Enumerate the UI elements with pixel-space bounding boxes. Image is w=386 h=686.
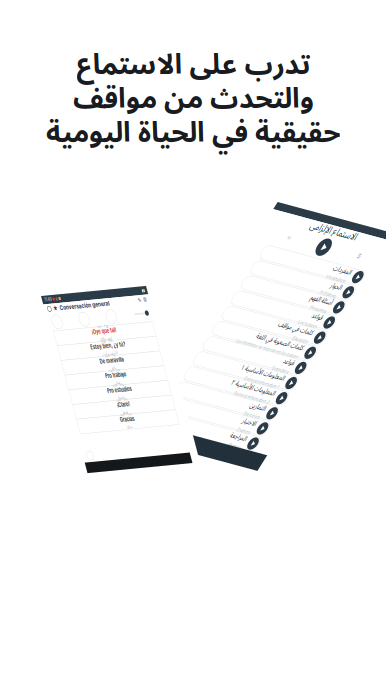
- staticText: طبعا: [263, 358, 284, 383]
- staticText: كلمات الصعوبة في اللغة: [242, 316, 386, 356]
- staticText: De maravilla: [226, 213, 322, 233]
- staticText: ¡Claro!: [248, 339, 299, 359]
- staticText: ayer hoy: [252, 371, 296, 382]
- staticText: Pro trabajo: [232, 255, 316, 275]
- staticText: عمل: [263, 274, 285, 299]
- staticText: ayer hoy: [252, 119, 296, 130]
- staticText: تدرب على الاستماع: [76, 35, 310, 94]
- staticText: Preguntas: [358, 225, 386, 241]
- staticText: الاستماع الإلزامي: [191, 6, 367, 63]
- staticText: كلمات في مواقف: [290, 274, 386, 313]
- staticText: Conversación general: [125, 51, 324, 73]
- staticText: Pro estudios: [225, 297, 323, 317]
- staticText: ★: [98, 51, 118, 73]
- staticText: ayer hoy: [252, 287, 296, 298]
- staticText: كيف حالك: [249, 148, 298, 173]
- staticText: قواعد: [382, 231, 386, 271]
- staticText: ayer hoy: [252, 203, 296, 214]
- staticText: المعلومات الأساسية ١: [256, 402, 386, 441]
- staticText: ¡Oye qué tal!: [225, 129, 323, 149]
- staticText: شكرا: [263, 400, 285, 425]
- staticText: المعلومات الأساسية ٢: [256, 444, 386, 484]
- staticText: أنا بخير و أنت: [243, 190, 305, 215]
- staticText: والتحدث من مواقف: [72, 69, 313, 128]
- staticText: أسئلة الفهم: [340, 189, 386, 228]
- staticText: حقيقية في الحياة اليومية: [45, 103, 340, 162]
- staticText: Gracias: [245, 381, 303, 401]
- staticText: ayer hoy: [252, 245, 296, 256]
- staticText: دراسة: [260, 316, 288, 341]
- staticText: Los lugares: [349, 268, 386, 284]
- staticText: ayer hoy: [252, 329, 296, 340]
- staticText: ⟲: [139, 72, 150, 87]
- staticText: Los términos se marcan en los países: [184, 353, 386, 369]
